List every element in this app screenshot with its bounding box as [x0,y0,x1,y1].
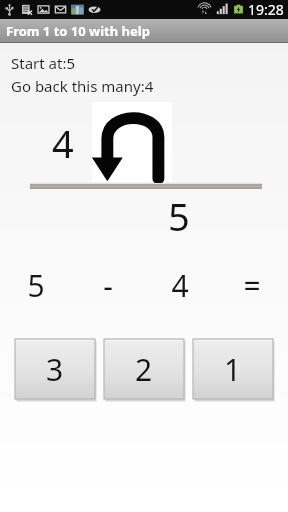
staticText: 1 [224,349,242,390]
staticText: 19:28 [248,0,284,19]
staticText: 4 [171,265,189,306]
staticText: 3 [46,349,64,390]
staticText: 5 [168,190,190,242]
staticText: 2 [135,349,153,390]
staticText: Go back this many:4 [11,76,154,96]
staticText: Start at:5 [11,53,76,73]
staticText: From 1 to 10 with help [6,22,150,40]
staticText: = [243,265,261,306]
staticText: - [103,265,113,306]
staticText: 4 [52,117,74,169]
staticText: 5 [27,265,45,306]
button[interactable]: 2 [104,339,184,399]
button[interactable]: 1 [193,339,273,399]
button[interactable]: 3 [15,339,95,399]
